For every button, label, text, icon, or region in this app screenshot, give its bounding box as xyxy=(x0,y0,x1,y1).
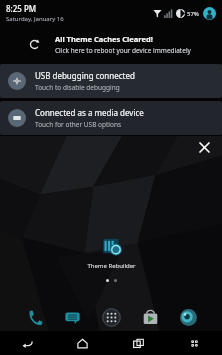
staticText: Saturday, January 16 xyxy=(6,15,64,23)
button[interactable]: Menu xyxy=(166,331,222,355)
button[interactable]: Phone xyxy=(23,306,45,328)
staticText: 57% xyxy=(187,10,199,18)
staticText: Touch for other USB options xyxy=(35,120,122,129)
staticText: All Theme Caches Cleared! xyxy=(55,34,153,44)
staticText: USB debugging connected xyxy=(35,70,135,81)
button[interactable]: Camera xyxy=(177,306,199,328)
button[interactable]: All apps xyxy=(100,306,122,328)
button[interactable]: Close notification shade xyxy=(194,137,214,157)
button[interactable]: Recent apps xyxy=(110,331,166,355)
button[interactable]: Home xyxy=(55,331,110,355)
button[interactable]: User profile xyxy=(203,7,216,20)
button[interactable]: Connected as a media device xyxy=(0,101,222,135)
button[interactable]: Theme Rebuilder xyxy=(87,236,136,270)
button[interactable]: All Theme Caches Cleared! xyxy=(0,30,222,58)
button[interactable]: Back xyxy=(0,331,55,355)
staticText: 8:25 PM xyxy=(6,3,37,14)
button[interactable]: Messaging xyxy=(61,306,83,328)
button[interactable]: Play Store xyxy=(139,306,161,328)
staticText: Click here to reboot your device immedia… xyxy=(55,46,191,55)
staticText: Touch to disable debugging xyxy=(35,83,120,92)
staticText: Theme Rebuilder xyxy=(87,262,136,270)
button[interactable]: USB debugging connected xyxy=(0,64,222,98)
staticText: Connected as a media device xyxy=(35,107,144,118)
